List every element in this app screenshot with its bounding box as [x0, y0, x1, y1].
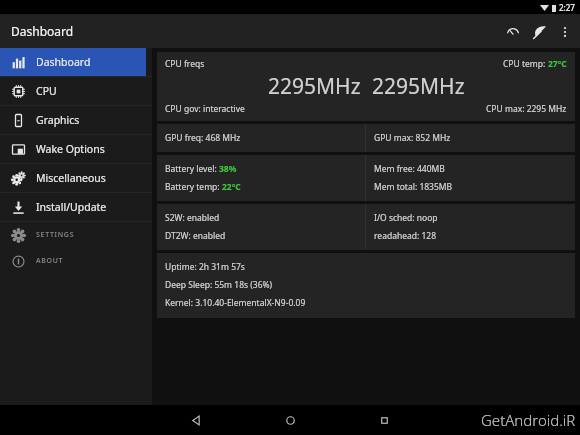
staticText: Uptime: 2h 31m 57s [165, 261, 245, 273]
button[interactable]: Recents [362, 405, 406, 435]
button[interactable]: CPU [0, 77, 152, 105]
button[interactable]: More options [553, 20, 577, 44]
button[interactable]: Dashboard [0, 48, 146, 76]
button[interactable]: Graphics [0, 106, 152, 134]
button[interactable]: Wake Options [0, 135, 152, 163]
button[interactable]: SETTINGS [0, 222, 152, 248]
button[interactable]: Power saving [526, 18, 553, 45]
staticText: GPU freq: 468 MHz [165, 132, 241, 144]
staticText: 2295MHz [372, 72, 465, 101]
button[interactable]: Home [268, 405, 312, 435]
staticText: Graphics [36, 113, 80, 127]
staticText: CPU freqs [165, 58, 205, 70]
staticText: readahead: 128 [374, 230, 437, 242]
staticText: Mem total: 1835MB [374, 181, 453, 193]
staticText: 22°C [222, 181, 241, 193]
staticText: 38% [219, 163, 237, 175]
staticText: Kernel: 3.10.40-ElementalX-N9-0.09 [165, 297, 306, 309]
button[interactable]: Benchmark [499, 18, 526, 45]
staticText: 27°C [548, 58, 567, 70]
staticText: Wake Options [36, 142, 105, 156]
staticText: Deep Sleep: 55m 18s (36%) [165, 279, 273, 291]
staticText: ABOUT [36, 256, 64, 266]
staticText: CPU temp: [503, 58, 548, 70]
button[interactable]: ABOUT [0, 248, 152, 274]
staticText: Dashboard [36, 55, 91, 69]
staticText: CPU [36, 84, 57, 98]
staticText: Battery temp: [165, 181, 222, 193]
staticText: Miscellaneous [36, 171, 106, 185]
staticText: GPU max: 852 MHz [374, 132, 451, 144]
staticText: Dashboard [11, 23, 74, 39]
button[interactable]: Install/Update [0, 193, 152, 221]
staticText: 2:27 [559, 2, 575, 13]
button[interactable]: Miscellaneous [0, 164, 152, 192]
staticText: Install/Update [36, 200, 107, 214]
staticText: CPU max: 2295 MHz [486, 103, 567, 115]
staticText: GetAndroid.iR [481, 410, 576, 430]
staticText: Battery level: [165, 163, 219, 175]
button[interactable]: Back [174, 405, 218, 435]
staticText: CPU gov: interactive [165, 103, 245, 115]
staticText: DT2W: enabled [165, 230, 226, 242]
staticText: 2295MHz [268, 72, 361, 101]
staticText: S2W: enabled [165, 212, 220, 224]
staticText: SETTINGS [36, 230, 75, 240]
staticText: Mem free: 440MB [374, 163, 445, 175]
staticText: I/O sched: noop [374, 212, 438, 224]
